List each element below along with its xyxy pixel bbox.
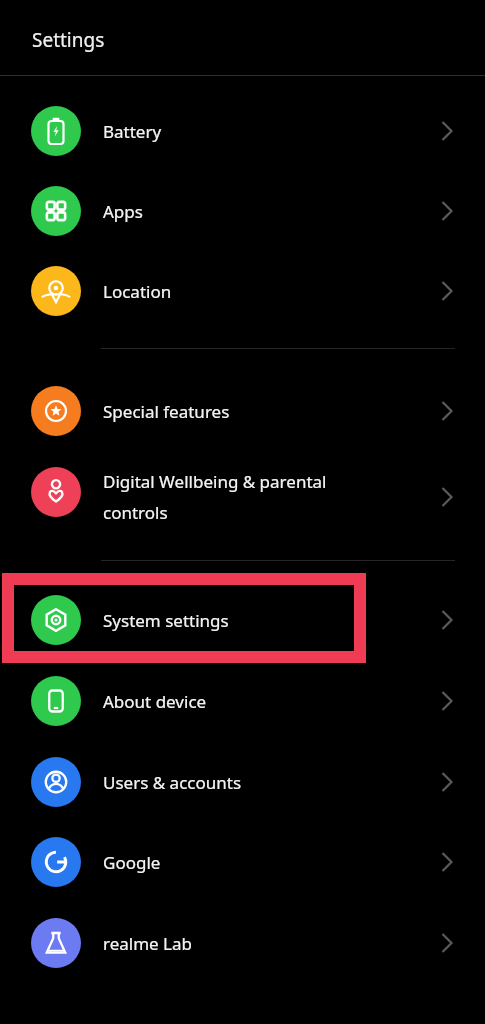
staticText: System settings: [103, 609, 229, 632]
button[interactable]: About device: [0, 661, 485, 741]
button[interactable]: Digital Wellbeing & parental controls: [0, 457, 485, 537]
staticText: Location: [103, 280, 172, 303]
button[interactable]: realme Lab: [0, 903, 485, 983]
staticText: Apps: [103, 200, 143, 223]
button[interactable]: System settings: [0, 580, 485, 660]
staticText: Google: [103, 851, 161, 874]
staticText: About device: [103, 690, 207, 713]
button[interactable]: Google: [0, 822, 485, 902]
staticText: Digital Wellbeing & parental controls: [103, 470, 327, 524]
staticText: Battery: [103, 120, 162, 143]
button[interactable]: Users & accounts: [0, 742, 485, 822]
button[interactable]: Battery: [0, 91, 485, 171]
button[interactable]: Apps: [0, 171, 485, 251]
staticText: Special features: [103, 400, 230, 423]
staticText: realme Lab: [103, 932, 192, 955]
staticText: Users & accounts: [103, 771, 242, 794]
button[interactable]: Location: [0, 251, 485, 331]
button[interactable]: Special features: [0, 371, 485, 451]
staticText: Settings: [32, 27, 105, 53]
